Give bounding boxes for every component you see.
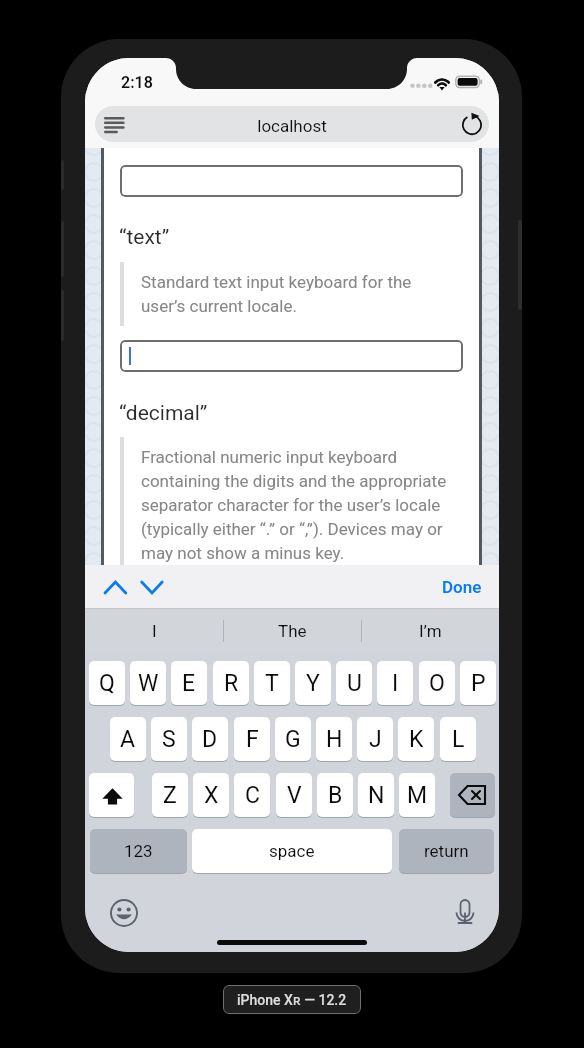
staticText: “decimal” [119, 401, 208, 426]
staticText: return [424, 841, 469, 861]
staticText: O [429, 670, 445, 697]
button[interactable]: M [399, 773, 435, 817]
staticText: Z [163, 782, 177, 809]
button[interactable]: N [358, 773, 394, 817]
staticText: “text” [119, 225, 170, 250]
button[interactable]: S [151, 717, 187, 761]
staticText: M [407, 782, 428, 809]
button[interactable]: Q [89, 661, 125, 705]
button[interactable]: P [460, 661, 496, 705]
staticText: L [452, 726, 465, 753]
staticText: V [287, 782, 302, 809]
button[interactable]: Reload [454, 106, 490, 142]
staticText: H [326, 726, 343, 753]
button[interactable]: I [85, 609, 223, 652]
staticText: localhost [85, 116, 499, 136]
staticText: X [204, 782, 219, 809]
button[interactable]: Shift [89, 773, 134, 817]
staticText: 123 [124, 841, 153, 861]
staticText: 2:18 [121, 73, 153, 92]
button[interactable]: U [336, 661, 372, 705]
staticText: R [224, 670, 239, 697]
staticText: iPhone Xʀ — 12.2 [237, 990, 347, 1009]
staticText: Fractional numeric input keyboard contai… [141, 447, 453, 563]
button[interactable]: Next field [129, 567, 169, 607]
button[interactable]: 123 [90, 829, 187, 873]
button[interactable]: R [213, 661, 249, 705]
button[interactable] [120, 165, 463, 197]
button[interactable]: The [224, 609, 361, 652]
button[interactable]: L [440, 717, 476, 761]
staticText: Done [442, 577, 482, 597]
staticText: N [368, 782, 385, 809]
staticText: I [152, 621, 157, 641]
button[interactable] [120, 340, 463, 372]
staticText: Standard text input keyboard for the use… [141, 272, 453, 316]
staticText: D [202, 726, 218, 753]
button[interactable]: A [110, 717, 146, 761]
staticText: G [285, 726, 301, 753]
button[interactable]: G [275, 717, 311, 761]
button[interactable]: K [398, 717, 434, 761]
staticText: J [369, 726, 382, 753]
button[interactable]: J [357, 717, 393, 761]
staticText: F [246, 726, 259, 753]
staticText: T [265, 670, 279, 697]
button[interactable]: W [130, 661, 166, 705]
button[interactable] [95, 106, 489, 142]
button[interactable]: X [193, 773, 229, 817]
staticText: W [138, 670, 159, 697]
button[interactable]: Backspace [450, 773, 495, 817]
button[interactable]: T [254, 661, 290, 705]
button[interactable]: Dictation [450, 898, 480, 928]
staticText: U [347, 670, 362, 697]
button[interactable]: return [399, 829, 494, 873]
staticText: S [162, 726, 176, 753]
button[interactable]: V [276, 773, 312, 817]
button[interactable]: I [377, 661, 413, 705]
button[interactable]: I’m [362, 609, 499, 652]
button[interactable]: D [192, 717, 228, 761]
staticText: A [120, 726, 136, 753]
button[interactable]: Done [433, 565, 491, 608]
staticText: I’m [419, 621, 442, 641]
button[interactable]: Previous field [93, 567, 133, 607]
button[interactable]: space [192, 829, 392, 873]
button[interactable]: E [171, 661, 207, 705]
button[interactable]: Z [152, 773, 188, 817]
staticText: C [245, 782, 260, 809]
staticText: E [182, 670, 196, 697]
button[interactable]: B [317, 773, 353, 817]
button[interactable]: F [234, 717, 270, 761]
button[interactable]: Reader view [96, 106, 132, 142]
button[interactable]: O [419, 661, 455, 705]
button[interactable]: H [316, 717, 352, 761]
button[interactable]: Y [295, 661, 331, 705]
button[interactable]: Emoji keyboard [109, 898, 139, 928]
staticText: space [269, 841, 315, 861]
button[interactable]: iPhone Xʀ — 12.2 [223, 985, 361, 1014]
staticText: Q [99, 670, 115, 697]
staticText: P [471, 670, 486, 697]
staticText: K [409, 726, 424, 753]
staticText: Y [306, 670, 320, 697]
staticText: B [328, 782, 343, 809]
staticText: The [278, 621, 307, 641]
button[interactable]: C [234, 773, 270, 817]
staticText: I [392, 670, 399, 697]
